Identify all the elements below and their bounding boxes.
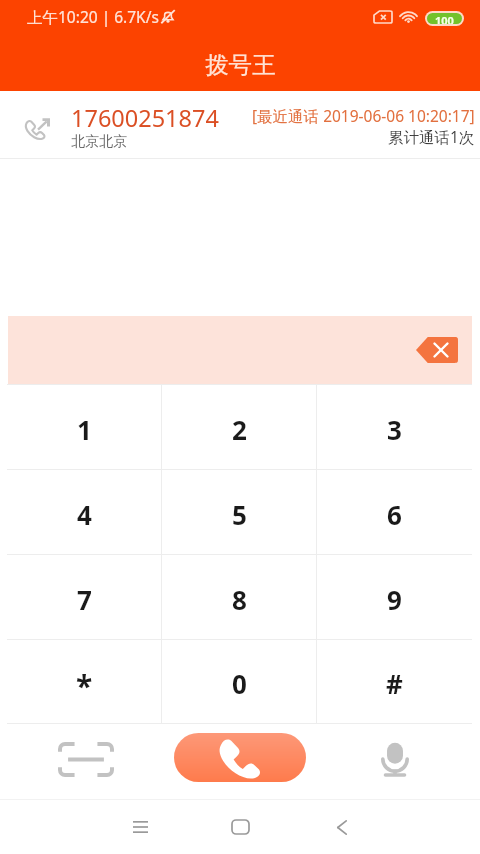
button[interactable]: Scan [48, 733, 123, 789]
staticText: 5 [232, 497, 247, 532]
button[interactable]: 3 [317, 385, 472, 469]
button[interactable]: 7 [7, 555, 162, 639]
button[interactable]: Recents [110, 802, 171, 852]
button[interactable]: 9 [317, 555, 472, 639]
button[interactable]: Delete [416, 337, 458, 363]
button[interactable]: * [7, 640, 162, 723]
button[interactable]: 5 [162, 470, 317, 554]
staticText: 1 [77, 412, 92, 447]
staticText: [最近通话 2019-06-06 10:20:17] [252, 105, 475, 126]
staticText: * [76, 665, 93, 706]
staticText: 3 [387, 412, 402, 447]
staticText: 北京北京 [71, 133, 127, 151]
staticText: 2 [232, 412, 247, 447]
staticText: 9 [387, 582, 402, 617]
button[interactable]: Voice input [357, 733, 432, 789]
staticText: 4 [77, 497, 92, 532]
button[interactable]: 1 [7, 385, 162, 469]
staticText: 0 [232, 666, 247, 701]
button[interactable]: 4 [7, 470, 162, 554]
staticText: # [386, 666, 403, 701]
button[interactable]: Call [174, 733, 306, 782]
button[interactable]: 2 [162, 385, 317, 469]
staticText: 17600251874 [71, 102, 219, 134]
button[interactable]: Back [311, 802, 372, 852]
button[interactable]: # [317, 640, 472, 723]
button[interactable]: Home [210, 802, 271, 852]
button[interactable]: 6 [317, 470, 472, 554]
button[interactable]: 0 [162, 640, 317, 723]
button[interactable]: 拨号王 [0, 32, 480, 91]
button[interactable]: Dialed number [8, 316, 472, 384]
staticText: 7 [77, 582, 92, 617]
staticText: 累计通话1次 [388, 126, 475, 147]
staticText: 拨号王 [205, 50, 276, 80]
button[interactable]: 17600251874 [0, 91, 480, 158]
staticText: 6 [387, 497, 402, 532]
staticText: 上午10:20 | 6.7K/s [27, 6, 159, 27]
staticText: 100 [435, 13, 454, 24]
button[interactable]: 8 [162, 555, 317, 639]
staticText: 8 [232, 582, 247, 617]
